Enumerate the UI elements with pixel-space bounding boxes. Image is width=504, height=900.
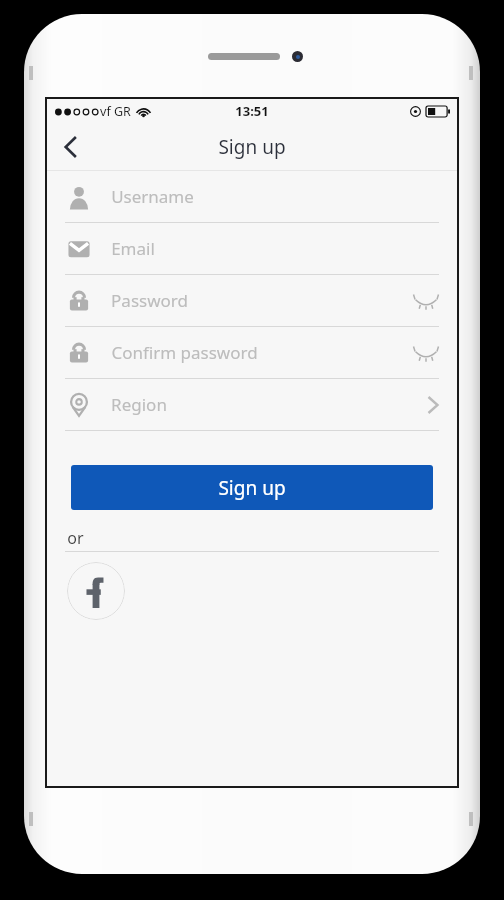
staticText: Password [111, 289, 188, 312]
button[interactable]: Email [47, 223, 457, 275]
staticText: Email [111, 237, 155, 260]
button[interactable]: Sign up [71, 465, 433, 510]
button[interactable]: Username [47, 171, 457, 223]
staticText: Confirm password [111, 341, 258, 364]
button[interactable]: Region [47, 379, 457, 431]
button[interactable]: Sign up with Facebook [67, 562, 125, 620]
button[interactable]: Password [47, 275, 457, 327]
staticText: Sign up [218, 475, 286, 501]
staticText: Sign up [218, 134, 286, 160]
button[interactable]: Back [47, 123, 95, 171]
staticText: Username [111, 185, 194, 208]
staticText: Region [111, 393, 167, 416]
staticText: vf GR [100, 103, 131, 120]
staticText: 13:51 [235, 102, 269, 120]
button[interactable]: Confirm password [47, 327, 457, 379]
staticText: or [67, 527, 84, 549]
